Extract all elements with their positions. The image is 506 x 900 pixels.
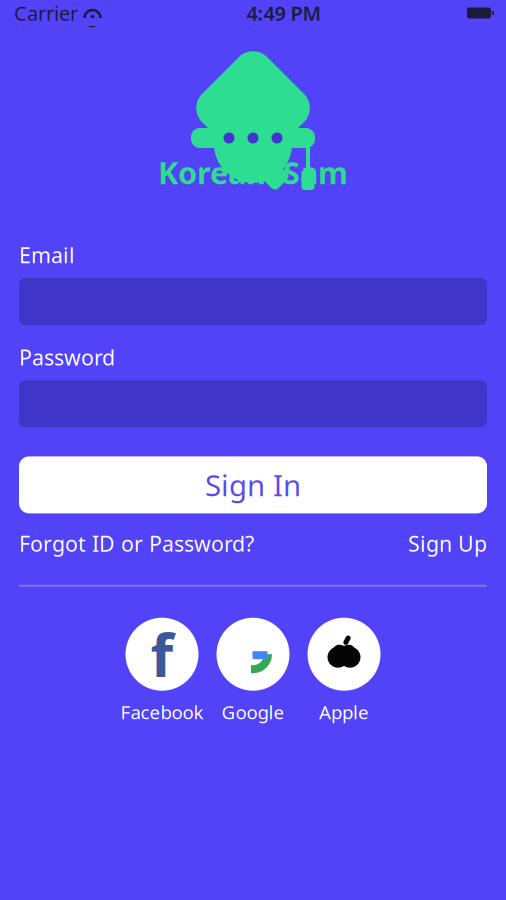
button[interactable]: Sign In	[19, 456, 487, 513]
button[interactable]: f	[119, 618, 205, 724]
button[interactable]: Apple	[301, 618, 387, 724]
staticText: Google	[221, 700, 284, 724]
staticText: f	[150, 615, 173, 693]
staticText: Password	[19, 343, 115, 371]
staticText: KoreanSSam	[158, 152, 348, 193]
staticText: Facebook	[120, 700, 203, 724]
staticText: Email	[19, 241, 75, 269]
staticText: Sign Up	[408, 529, 487, 558]
button[interactable]: Google	[210, 618, 296, 724]
staticText: Carrier	[14, 0, 78, 26]
button[interactable]: Forgot ID or Password?	[19, 529, 254, 558]
button[interactable]	[19, 380, 487, 427]
staticText: 4:49 PM	[246, 0, 321, 26]
staticText: Apple	[319, 700, 369, 724]
button[interactable]: Sign Up	[408, 529, 487, 558]
staticText: Forgot ID or Password?	[19, 529, 254, 558]
staticText: Sign In	[205, 465, 301, 504]
